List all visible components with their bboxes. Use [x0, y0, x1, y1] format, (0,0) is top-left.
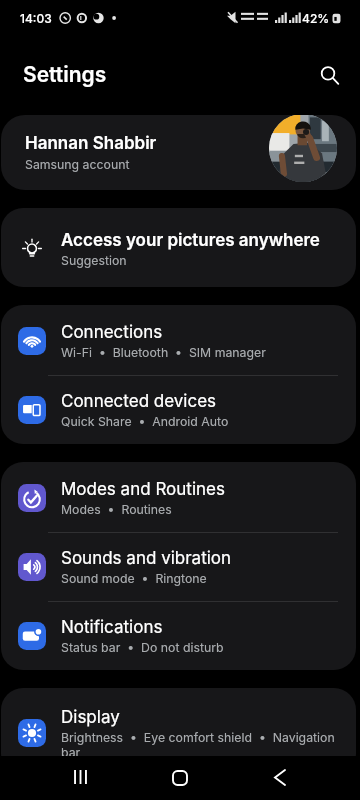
button[interactable]: Connected devices: [1, 376, 356, 444]
button[interactable]: Hannan Shabbir: [1, 115, 356, 190]
button[interactable]: Sounds and vibration: [1, 533, 356, 602]
staticText: Settings: [23, 62, 107, 87]
button[interactable]: Home: [130, 758, 230, 795]
staticText: Connected devices: [61, 391, 217, 412]
button[interactable]: Access your pictures anywhere: [1, 210, 356, 287]
staticText: Hannan Shabbir: [25, 133, 157, 154]
staticText: Brightness • Eye comfort shield • Naviga…: [61, 730, 342, 760]
staticText: Display: [61, 707, 120, 728]
staticText: Wi-Fi • Bluetooth • SIM manager: [61, 345, 266, 360]
staticText: Connections: [61, 322, 163, 343]
button[interactable]: Recent apps: [30, 758, 130, 795]
button[interactable]: Search: [314, 60, 344, 90]
staticText: Suggestion: [61, 253, 127, 268]
staticText: Notifications: [61, 617, 163, 638]
button[interactable]: Back: [230, 758, 330, 795]
button[interactable]: Connections: [1, 307, 356, 376]
staticText: Samsung account: [25, 157, 130, 172]
button[interactable]: Display: [1, 690, 356, 776]
staticText: 42%: [302, 11, 330, 26]
staticText: Modes and Routines: [61, 479, 225, 500]
staticText: Quick Share • Android Auto: [61, 414, 229, 429]
staticText: Sound mode • Ringtone: [61, 571, 207, 586]
staticText: Sounds and vibration: [61, 548, 232, 569]
button[interactable]: Modes and Routines: [1, 464, 356, 533]
staticText: Status bar • Do not disturb: [61, 640, 224, 655]
button[interactable]: Notifications: [1, 602, 356, 670]
staticText: Modes • Routines: [61, 502, 172, 517]
staticText: Access your pictures anywhere: [61, 230, 320, 251]
staticText: 14:03: [20, 11, 52, 26]
